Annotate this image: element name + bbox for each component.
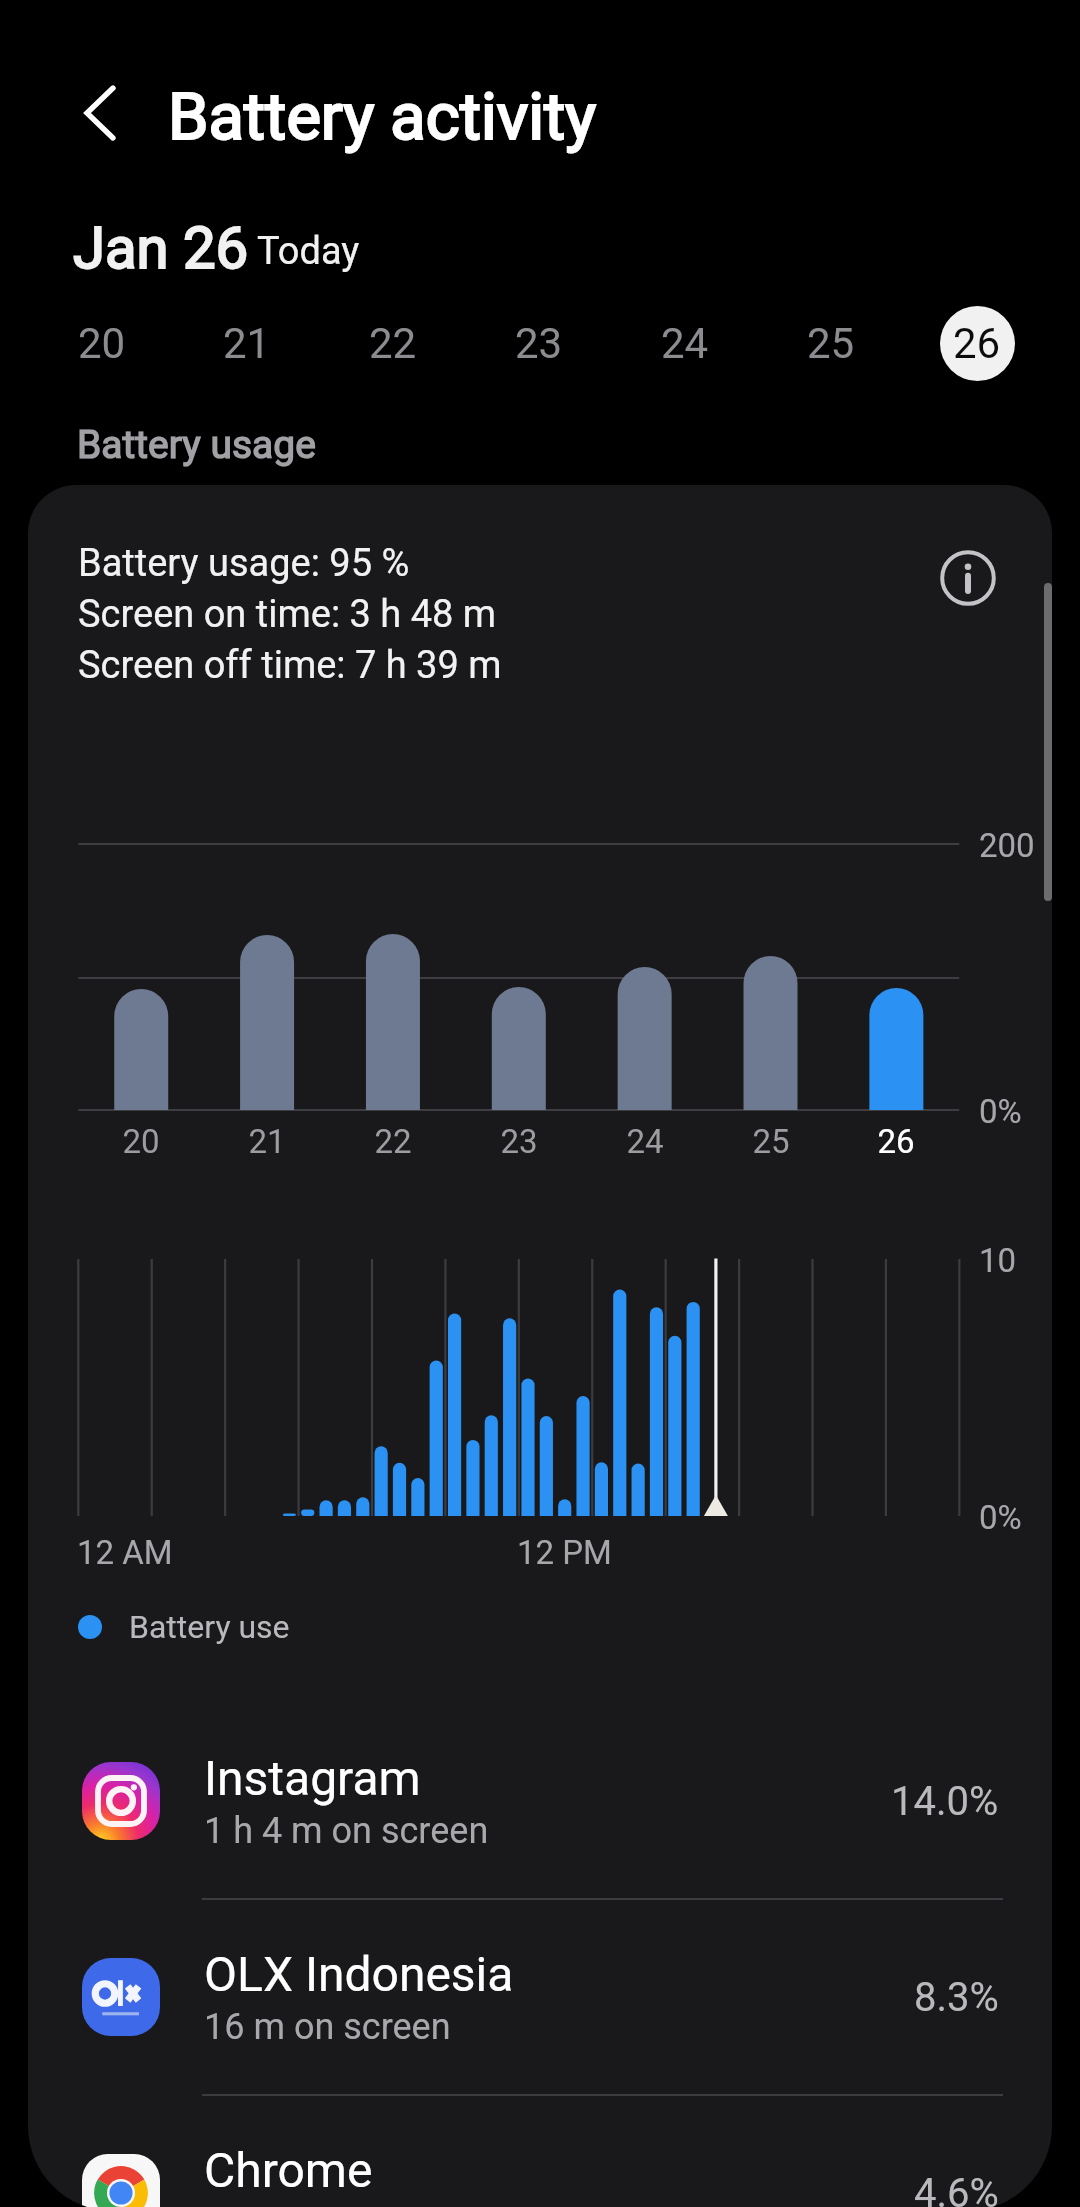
button[interactable]: 23 [491, 295, 587, 391]
button[interactable]: Chrome [28, 2108, 1052, 2207]
staticText: 26 [953, 319, 1001, 368]
staticText: 12 PM [517, 1533, 612, 1572]
staticText: 0% [979, 1498, 1022, 1537]
staticText: Instagram [204, 1750, 421, 1806]
staticText: 0% [979, 1092, 1022, 1131]
staticText: 25 [731, 1122, 811, 1161]
staticText: 22 [369, 319, 417, 368]
button[interactable]: 26 [929, 295, 1025, 391]
staticText: Today [257, 229, 360, 274]
button[interactable]: OLX Indonesia [28, 1912, 1052, 2082]
staticText: 1 h 4 m on screen [204, 1810, 489, 1852]
staticText: 200 [979, 826, 1035, 865]
button[interactable]: 25 [783, 295, 879, 391]
staticText: Jan 26 [73, 214, 249, 282]
staticText: Battery usage: 95 % [78, 541, 410, 586]
staticText: Chrome [204, 2142, 373, 2198]
button[interactable]: Information [928, 538, 1008, 618]
staticText: 14.0% [891, 1778, 999, 1825]
staticText: 16 m on screen [204, 2006, 451, 2048]
staticText: Battery usage [77, 422, 316, 468]
button[interactable]: 20 [54, 295, 150, 391]
staticText: 23 [515, 319, 563, 368]
button[interactable]: Instagram [28, 1716, 1052, 1886]
staticText: 23 [479, 1122, 559, 1161]
staticText: Battery activity [168, 79, 597, 155]
staticText: Screen off time: 7 h 39 m [78, 643, 502, 688]
button[interactable]: 21 [199, 295, 295, 391]
staticText: 20 [101, 1122, 181, 1161]
staticText: 22 [353, 1122, 433, 1161]
staticText: Screen on time: 3 h 48 m [78, 592, 497, 637]
staticText: 25 [807, 319, 855, 368]
staticText: 21 [223, 319, 271, 368]
staticText: 24 [661, 319, 709, 368]
staticText: 12 AM [77, 1533, 173, 1572]
staticText: 8.3% [914, 1974, 999, 2021]
staticText: 10 [979, 1241, 1017, 1280]
button[interactable]: Navigate up [52, 65, 148, 161]
button[interactable]: 22 [345, 295, 441, 391]
staticText: 26 [856, 1122, 936, 1161]
staticText: 4.6% [914, 2170, 999, 2207]
staticText: Battery use [129, 1608, 290, 1646]
staticText: OLX Indonesia [204, 1946, 514, 2002]
button[interactable]: 24 [637, 295, 733, 391]
staticText: 20 [78, 319, 126, 368]
staticText: 24 [605, 1122, 685, 1161]
staticText: 21 [227, 1122, 307, 1161]
